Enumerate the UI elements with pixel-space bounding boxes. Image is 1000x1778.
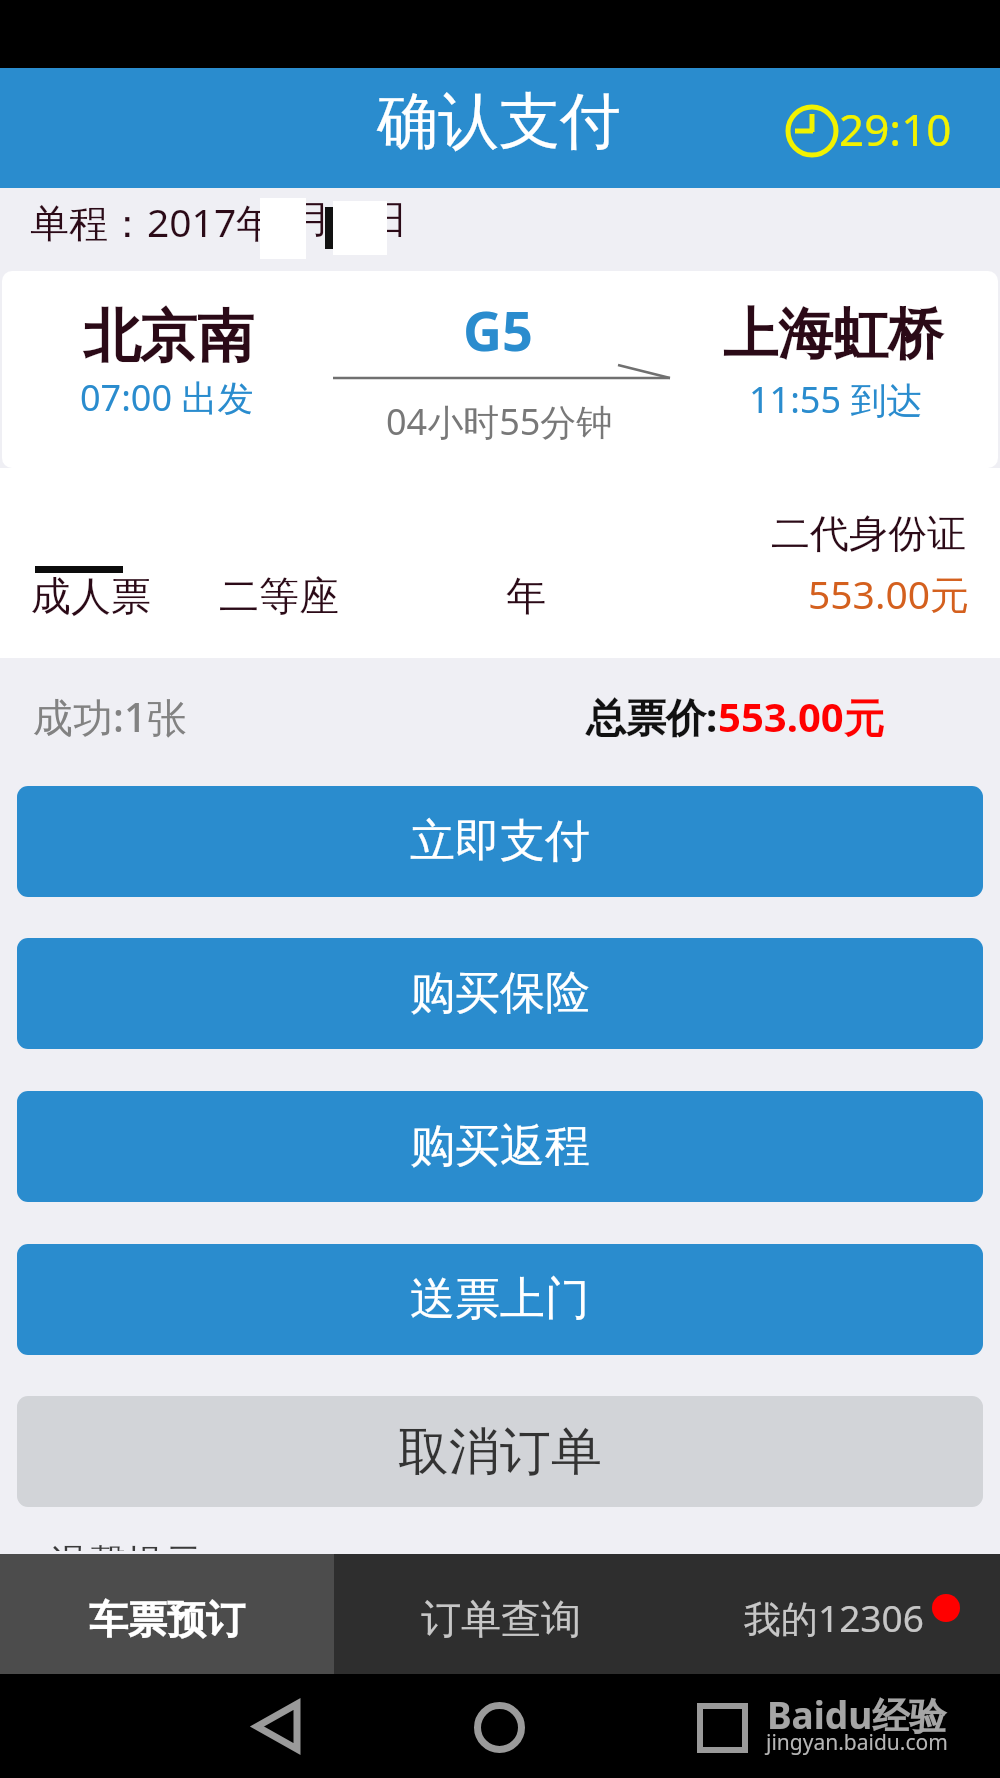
staticText: 29:10 xyxy=(839,99,952,159)
staticText: 取消订单 xyxy=(398,1420,602,1484)
staticText: 购买保险 xyxy=(410,965,590,1022)
staticText: 送票上门 xyxy=(410,1271,590,1328)
button[interactable]: 29:10 xyxy=(782,92,952,152)
button[interactable]: 购买保险 xyxy=(17,938,983,1049)
staticText: 04小时55分钟 xyxy=(386,397,613,446)
staticText: 日 xyxy=(369,195,408,244)
staticText: 月 xyxy=(293,195,332,244)
other: Back xyxy=(254,1701,300,1752)
button[interactable]: 我的12306 xyxy=(667,1554,1000,1674)
button[interactable]: 订单查询 xyxy=(334,1554,667,1674)
staticText: jingyan.baidu.com xyxy=(766,1728,948,1757)
staticText: 总票价: xyxy=(586,689,718,744)
other: Home xyxy=(474,1702,525,1753)
staticText: 购买返程 xyxy=(410,1118,590,1175)
staticText: 07:00 出发 xyxy=(80,373,254,422)
staticText: 北京南 xyxy=(83,301,254,373)
staticText: 立即支付 xyxy=(410,813,590,870)
staticText: G5 xyxy=(463,293,533,367)
button[interactable]: 送票上门 xyxy=(17,1244,983,1355)
staticText: 二等座 xyxy=(219,571,339,621)
staticText: Baidu经验 xyxy=(767,1689,947,1740)
staticText: 553.00元 xyxy=(718,689,884,744)
button[interactable]: 北京南 xyxy=(2,271,998,468)
staticText: 订单查询 xyxy=(421,1594,581,1644)
staticText: 单程：2017年 xyxy=(30,195,276,248)
staticText: 年 xyxy=(506,571,546,621)
staticText: 温馨提示： xyxy=(50,1541,240,1551)
staticText: 车票预订 xyxy=(89,1595,245,1644)
button[interactable]: 取消订单 xyxy=(17,1396,983,1507)
button[interactable]: 车票预订 xyxy=(0,1554,334,1674)
staticText: 成人票 xyxy=(31,571,151,621)
staticText: 11:55 到达 xyxy=(749,375,923,424)
staticText: 成功:1张 xyxy=(33,689,187,744)
button[interactable]: 购买返程 xyxy=(17,1091,983,1202)
button[interactable]: 立即支付 xyxy=(17,786,983,897)
staticText: 二代身份证 xyxy=(771,509,966,558)
other: Recent apps xyxy=(700,1706,745,1750)
staticText: 我的12306 xyxy=(744,1592,924,1643)
staticText: 上海虹桥 xyxy=(723,300,943,369)
staticText: 确认支付 xyxy=(377,83,621,160)
staticText: 553.00元 xyxy=(808,567,969,620)
